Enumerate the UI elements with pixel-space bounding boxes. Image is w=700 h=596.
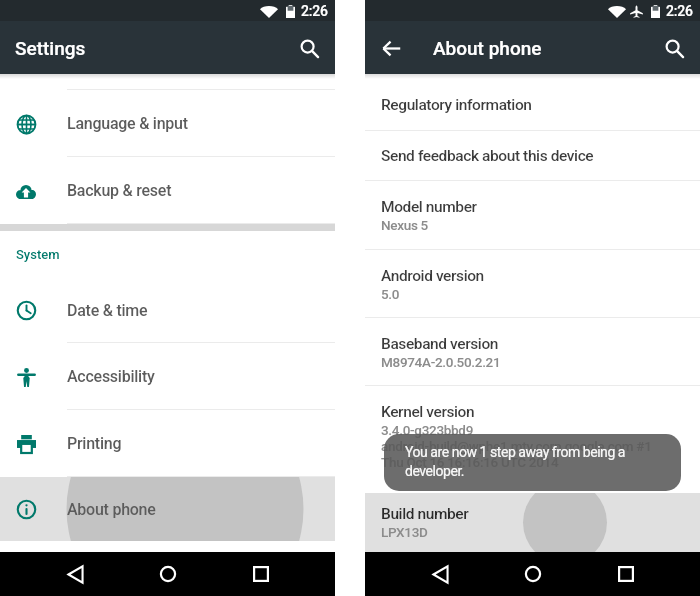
staticText: M8974A-2.0.50.2.21 xyxy=(381,354,501,370)
staticText: Accessibility xyxy=(67,367,155,386)
staticText: Regulatory information xyxy=(381,96,532,114)
staticText: LPX13D xyxy=(381,524,428,540)
staticText: Settings xyxy=(15,37,86,59)
staticText: About phone xyxy=(433,37,542,59)
button[interactable]: Model number xyxy=(365,181,700,250)
staticText: Backup & reset xyxy=(67,181,172,200)
button[interactable]: Date & time xyxy=(0,277,335,343)
staticText: 3.4.0-g323bbd9 xyxy=(381,422,474,438)
staticText: About phone xyxy=(67,500,156,519)
staticText: 5.0 xyxy=(381,286,400,302)
button[interactable]: Recent apps xyxy=(246,559,276,589)
staticText: Baseband version xyxy=(381,335,499,353)
button[interactable]: Android version xyxy=(365,250,700,318)
staticText: 2:26 xyxy=(301,3,328,19)
button[interactable]: Printing xyxy=(0,410,335,477)
button[interactable]: Language & input xyxy=(0,90,335,157)
staticText: Thu Oct 16 16:16:16 UTC 2014 xyxy=(381,454,559,470)
staticText: Android version xyxy=(381,267,484,285)
button[interactable]: Accessibility xyxy=(0,343,335,410)
button[interactable]: Baseband version xyxy=(365,318,700,386)
button[interactable]: About phone xyxy=(0,477,335,541)
staticText: System xyxy=(16,247,60,262)
staticText: Build number xyxy=(381,505,469,523)
button[interactable]: Home xyxy=(153,559,183,589)
staticText: Language & input xyxy=(67,114,188,133)
button[interactable]: Back xyxy=(60,559,90,589)
staticText: Nexus 5 xyxy=(381,217,428,233)
button[interactable]: Recent apps xyxy=(611,559,641,589)
staticText: Send feedback about this device xyxy=(381,147,594,165)
button[interactable]: Build number xyxy=(365,493,700,552)
button[interactable]: Regulatory information xyxy=(365,74,700,131)
button[interactable]: Home xyxy=(518,559,548,589)
button[interactable]: Send feedback about this device xyxy=(365,131,700,181)
button[interactable]: Backup & reset xyxy=(0,157,335,224)
staticText: Printing xyxy=(67,434,122,453)
staticText: developer. xyxy=(405,463,465,479)
button[interactable]: Search xyxy=(658,32,690,64)
staticText: 2:26 xyxy=(666,3,693,19)
button[interactable]: Kernel version xyxy=(365,386,700,493)
button[interactable]: Navigate up xyxy=(375,32,407,64)
staticText: Kernel version xyxy=(381,403,475,421)
staticText: You are now 1 step away from being a xyxy=(405,444,626,460)
staticText: Model number xyxy=(381,198,477,216)
staticText: android-build@wphe1.mtv.corp.google.com … xyxy=(381,438,652,454)
button[interactable]: Back xyxy=(425,559,455,589)
staticText: Date & time xyxy=(67,301,148,320)
button[interactable]: Search xyxy=(293,32,325,64)
